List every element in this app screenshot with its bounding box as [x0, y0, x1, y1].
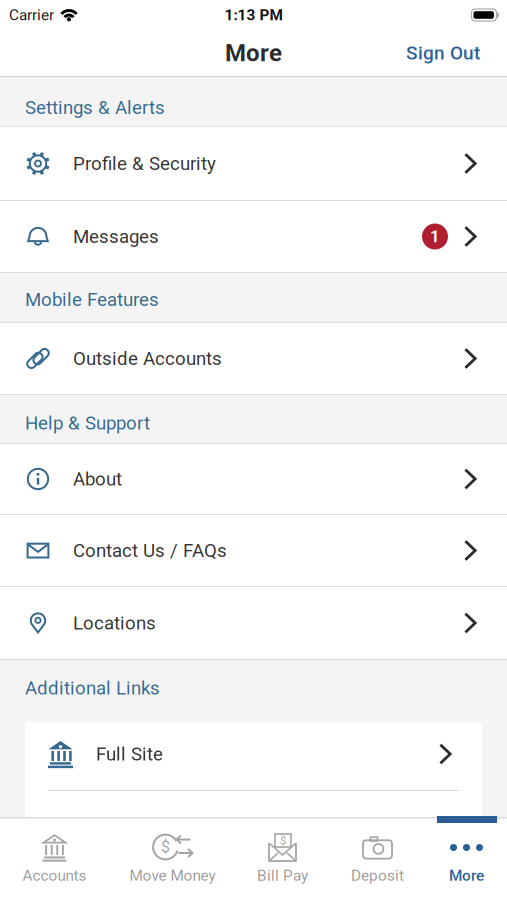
staticText: Mobile Features [25, 289, 159, 310]
staticText: Bill Pay [257, 866, 308, 884]
button[interactable]: Full Site [25, 722, 482, 790]
staticText: Messages [73, 226, 159, 247]
staticText: Full Site [96, 743, 163, 765]
staticText: Carrier [9, 6, 54, 24]
button[interactable]: $ [108, 823, 236, 889]
button[interactable]: Sign Out [406, 42, 480, 64]
button[interactable]: Locations [0, 587, 507, 659]
staticText: More [225, 39, 282, 67]
button[interactable]: $ [236, 823, 328, 889]
staticText: Locations [73, 612, 156, 634]
staticText: Outside Accounts [73, 348, 222, 369]
button[interactable]: Profile & Security [0, 127, 507, 200]
staticText: $ [280, 834, 286, 847]
staticText: Accounts [22, 866, 86, 884]
button[interactable]: Messages [0, 201, 507, 272]
staticText: Additional Links [25, 677, 160, 699]
button[interactable]: Accounts [0, 823, 108, 889]
staticText: About [73, 468, 122, 490]
staticText: Deposit [351, 866, 404, 884]
staticText: $ [161, 838, 170, 856]
staticText: More [449, 866, 484, 884]
staticText: 1 [430, 227, 440, 246]
button[interactable]: Outside Accounts [0, 323, 507, 394]
staticText: Move Money [129, 866, 215, 884]
staticText: Settings & Alerts [25, 97, 165, 118]
button[interactable]: About [0, 444, 507, 514]
staticText: Profile & Security [73, 153, 216, 174]
staticText: Sign Out [406, 42, 480, 64]
staticText: Contact Us / FAQs [73, 540, 227, 561]
staticText: 1:13 PM [224, 6, 282, 24]
button[interactable]: Contact Us / FAQs [0, 515, 507, 586]
staticText: Help & Support [25, 412, 150, 434]
button[interactable]: More [426, 823, 506, 889]
button[interactable]: Deposit [328, 823, 426, 889]
